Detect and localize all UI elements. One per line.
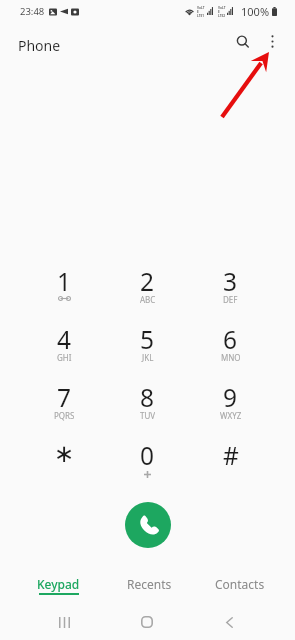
staticText: TUV [140,410,156,421]
button[interactable]: 1 [23,265,106,323]
button[interactable]: # [189,439,272,497]
staticText: DEF [223,294,238,305]
button[interactable]: ∗ [23,439,106,497]
button[interactable]: 0 [106,439,189,497]
button[interactable]: 8 [106,381,189,439]
staticText: WXYZ [220,410,242,421]
button[interactable]: 9 [189,381,272,439]
staticText: VoLTE [197,6,205,14]
button[interactable]: 7 [23,381,106,439]
button[interactable]: Search [228,27,257,56]
button[interactable]: 2 [106,265,189,323]
button[interactable]: 6 [189,323,272,381]
button[interactable]: More options [258,27,287,56]
staticText: Keypad [37,576,80,592]
staticText: 4 [57,323,72,356]
staticText: PQRS [54,410,75,421]
staticText: 100% [241,4,270,19]
staticText: LTE2 [218,14,226,18]
button[interactable]: 4 [23,323,106,381]
staticText: 23:48 [20,5,45,18]
staticText: LTE1 [197,14,205,18]
staticText: 7 [57,381,72,414]
button[interactable]: Recent apps [42,609,86,635]
staticText: 1 [57,265,72,298]
button[interactable]: Keypad [13,572,103,600]
staticText: Phone [18,36,61,55]
staticText: ∗ [54,439,75,468]
staticText: Recents [127,576,172,592]
staticText: 9 [223,381,238,414]
staticText: 0 [140,439,155,472]
button[interactable]: Back [207,609,251,635]
button[interactable]: 5 [106,323,189,381]
staticText: VoLTE [218,6,226,14]
button[interactable]: 3 [189,265,272,323]
staticText: 6 [223,323,238,356]
staticText: 3 [223,265,238,298]
button[interactable]: Home [125,609,169,635]
staticText: # [223,439,239,472]
button[interactable]: Recents [104,572,194,600]
staticText: JKL [142,352,154,363]
button[interactable]: Call [125,502,171,548]
staticText: ABC [140,294,156,305]
staticText: 5 [140,323,155,356]
staticText: MNO [221,352,241,363]
staticText: Contacts [215,576,265,592]
staticText: GHI [57,352,72,363]
staticText: 2 [140,265,155,298]
button[interactable]: Contacts [195,572,285,600]
staticText: 8 [140,381,155,414]
